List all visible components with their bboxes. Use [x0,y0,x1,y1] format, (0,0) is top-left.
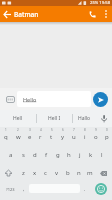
staticText: 4 [40,128,42,132]
button[interactable]: e [24,131,35,143]
staticText: w [16,133,21,141]
staticText: h [67,151,71,159]
button[interactable] [95,167,112,179]
button[interactable]: Hello [17,91,91,107]
staticText: 25% 19:58 [90,0,111,6]
staticText: p [105,133,109,141]
button[interactable]: Hell I [37,110,72,127]
button[interactable]: m [84,167,95,179]
staticText: s [22,151,25,159]
button[interactable]: y [57,131,68,143]
button[interactable] [95,183,107,195]
staticText: n [77,169,81,177]
button[interactable]: . [81,182,89,196]
staticText: a [9,151,13,159]
staticText: l [101,151,103,159]
button[interactable]: c [40,167,51,179]
staticText: Hallo [78,115,91,122]
staticText: v [55,169,59,177]
button[interactable]: a [5,149,17,161]
button[interactable] [0,167,17,179]
staticText: c [44,169,47,177]
button[interactable]: q [0,131,12,143]
button[interactable]: l [96,149,107,161]
staticText: r [39,133,42,141]
button[interactable] [96,110,112,127]
staticText: k [89,151,93,159]
staticText: 2 [17,128,19,132]
staticText: q [4,133,8,141]
staticText: Hell [13,115,23,122]
staticText: m [87,169,93,177]
button[interactable] [93,92,108,107]
staticText: , [23,186,25,193]
button[interactable]: r [35,131,46,143]
staticText: b [66,169,70,177]
button[interactable]: v [51,167,62,179]
button[interactable]: t [46,131,57,143]
staticText: i [84,133,86,141]
staticText: x [33,169,37,177]
button[interactable]: f [41,149,52,161]
staticText: Hello [23,96,37,103]
staticText: z [22,169,25,177]
staticText: 6 [62,128,64,132]
button[interactable]: p [101,131,112,143]
staticText: o [94,133,98,141]
staticText: 0 [106,128,108,132]
staticText: ?123 [6,187,15,192]
button[interactable]: u [68,131,79,143]
staticText: 5 [51,128,53,132]
button[interactable]: o [90,131,101,143]
staticText: 8 [84,128,86,132]
staticText: y [61,133,65,141]
button[interactable]: i [79,131,90,143]
button[interactable]: w [12,131,24,143]
button[interactable]: j [74,149,85,161]
button[interactable]: ?123 [0,182,20,196]
button[interactable]: d [29,149,41,161]
button[interactable]: x [29,167,40,179]
staticText: . [84,186,86,193]
staticText: Hell I [48,115,61,122]
button[interactable] [84,6,100,22]
button[interactable]: s [17,149,29,161]
button[interactable] [0,6,14,22]
button[interactable]: Hallo [73,110,96,127]
button[interactable]: n [73,167,84,179]
button[interactable]: , [20,182,28,196]
staticText: t [50,133,53,141]
staticText: 3 [29,128,31,132]
staticText: 9 [95,128,97,132]
staticText: u [72,133,76,141]
staticText: 7 [73,128,75,132]
button[interactable]: h [63,149,74,161]
button[interactable]: g [52,149,63,161]
button[interactable]: z [17,167,29,179]
button[interactable]: b [62,167,73,179]
staticText: Batman [14,10,39,19]
button[interactable]: Hell [0,110,36,127]
staticText: f [45,151,48,159]
staticText: e [28,133,32,141]
staticText: g [56,151,60,159]
staticText: d [33,151,37,159]
button[interactable] [3,91,17,107]
button[interactable]: k [85,149,96,161]
staticText: j [79,151,81,159]
button[interactable] [100,6,112,22]
staticText: 1 [5,128,7,132]
